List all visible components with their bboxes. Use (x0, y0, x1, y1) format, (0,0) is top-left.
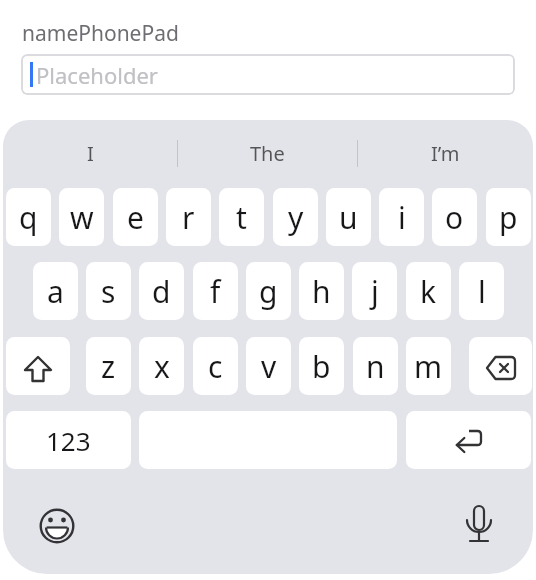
button[interactable]: m (406, 337, 451, 395)
button[interactable]: g (246, 262, 291, 320)
button[interactable]: b (299, 337, 344, 395)
button[interactable]: l (459, 262, 504, 320)
staticText: i (398, 197, 406, 238)
staticText: 123 (46, 423, 91, 458)
button[interactable]: The (207, 138, 327, 168)
staticText: z (101, 346, 116, 387)
button[interactable]: q (6, 188, 51, 246)
staticText: d (152, 271, 171, 312)
button[interactable]: c (193, 337, 238, 395)
button[interactable]: Placeholder (21, 54, 515, 95)
button[interactable] (464, 504, 494, 546)
staticText: c (208, 346, 223, 387)
button[interactable]: v (246, 337, 291, 395)
button[interactable]: u (326, 188, 371, 246)
staticText: v (261, 346, 277, 387)
button[interactable]: z (86, 337, 131, 395)
staticText: o (445, 197, 464, 238)
staticText: h (312, 271, 331, 312)
staticText: n (366, 346, 385, 387)
staticText: x (154, 346, 170, 387)
button[interactable]: p (486, 188, 531, 246)
button[interactable] (406, 411, 531, 469)
button[interactable]: t (219, 188, 264, 246)
button[interactable] (37, 506, 77, 546)
button[interactable]: e (113, 188, 158, 246)
button[interactable]: I’m (385, 138, 505, 168)
staticText: I’m (431, 140, 460, 167)
staticText: w (70, 197, 94, 238)
button[interactable]: o (432, 188, 477, 246)
button[interactable]: I (30, 138, 150, 168)
staticText: a (47, 271, 64, 312)
staticText: m (414, 346, 443, 387)
button[interactable]: d (139, 262, 184, 320)
button[interactable]: w (59, 188, 104, 246)
staticText: r (182, 197, 195, 238)
button[interactable] (469, 337, 532, 395)
staticText: The (250, 140, 285, 167)
staticText: l (478, 271, 486, 312)
staticText: j (371, 271, 379, 312)
staticText: q (19, 197, 38, 238)
staticText: s (101, 271, 116, 312)
staticText: y (288, 197, 304, 238)
button[interactable]: h (299, 262, 344, 320)
button[interactable]: x (139, 337, 184, 395)
staticText: p (499, 197, 518, 238)
button[interactable]: y (273, 188, 318, 246)
staticText: u (339, 197, 358, 238)
staticText: f (210, 271, 221, 312)
button[interactable]: s (86, 262, 131, 320)
button[interactable]: i (379, 188, 424, 246)
button[interactable]: j (352, 262, 397, 320)
staticText: Placeholder (36, 60, 158, 90)
staticText: b (312, 346, 331, 387)
staticText: namePhonePad (22, 19, 179, 48)
button[interactable] (6, 337, 70, 395)
button[interactable]: f (193, 262, 238, 320)
staticText: g (259, 271, 278, 312)
button[interactable]: n (353, 337, 398, 395)
staticText: t (236, 197, 247, 238)
staticText: k (420, 271, 437, 312)
button[interactable]: r (166, 188, 211, 246)
staticText: I (87, 140, 94, 167)
staticText: e (127, 197, 144, 238)
button[interactable]: k (406, 262, 451, 320)
button[interactable]: 123 (6, 411, 131, 469)
button[interactable]: a (33, 262, 78, 320)
